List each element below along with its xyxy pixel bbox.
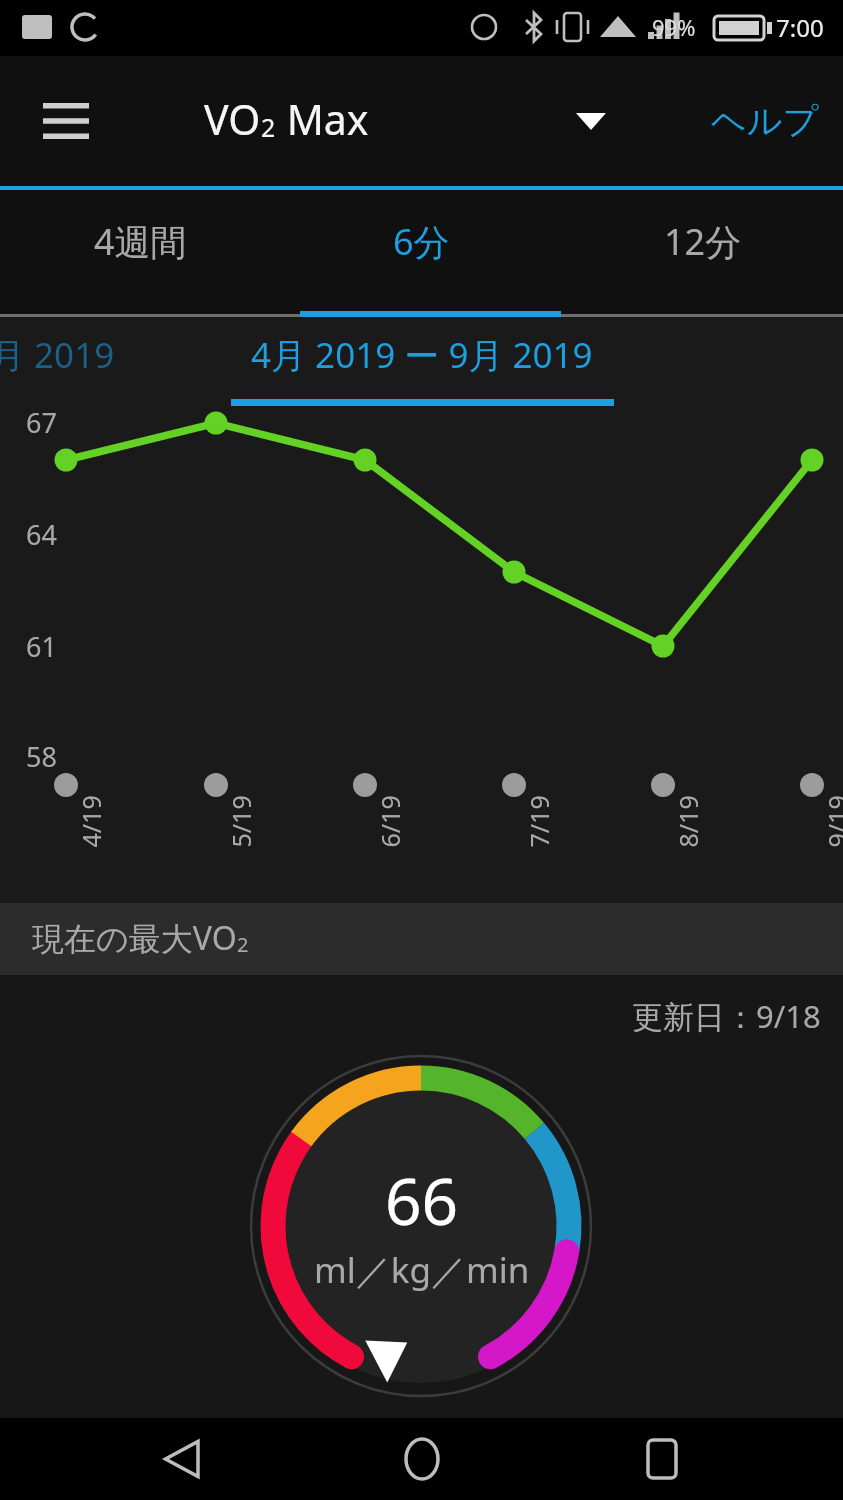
staticText: 現在の最大VO [32,916,237,960]
staticText: 6分 [393,217,450,266]
button[interactable]: ヘルプ [697,87,833,155]
button[interactable]: VO [204,91,369,147]
staticText: 4/19 [73,794,107,847]
button[interactable]: 12分 [562,190,843,317]
button[interactable]: Home [362,1418,482,1500]
button[interactable]: Back [121,1418,241,1500]
staticText: 12分 [664,217,742,266]
staticText: 6/19 [372,794,406,847]
staticText: 66 [385,1157,459,1244]
staticText: 2 [261,110,276,144]
staticText: VO [204,91,261,147]
staticText: 61 [26,628,57,665]
staticText: 58 [26,738,57,775]
button[interactable]: 4月 2019 ー 9月 2019 [251,331,593,379]
button[interactable]: 4週間 [0,190,281,317]
staticText: 2 [237,931,249,958]
button[interactable]: Open navigation menu [26,81,106,161]
staticText: 64 [26,516,57,553]
staticText: 4週間 [94,217,187,266]
button[interactable]: Change metric [558,88,624,154]
button[interactable]: 6分 [281,190,562,317]
staticText: 5/19 [223,794,257,847]
staticText: 99% [652,12,696,42]
staticText: ヘルプ [711,99,819,143]
staticText: 7:00 [776,11,824,44]
staticText: ml／kg／min [314,1246,530,1294]
staticText: 月 2019 [0,331,115,379]
staticText: Max [276,91,369,147]
button[interactable]: Recent apps [602,1418,722,1500]
staticText: 7/19 [521,794,555,847]
staticText: 9/19 [819,794,843,847]
staticText: 更新日：9/18 [632,995,821,1037]
staticText: 8/19 [670,794,704,847]
staticText: 67 [26,404,57,441]
